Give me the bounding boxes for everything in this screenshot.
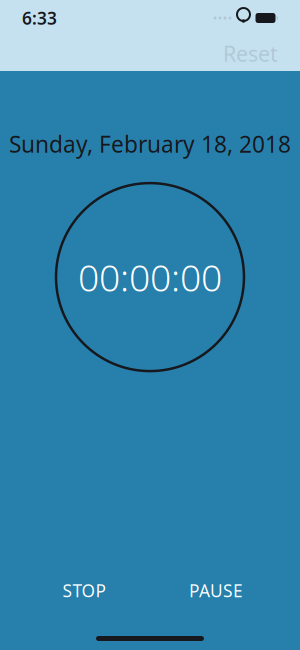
staticText: 6:33 xyxy=(22,6,57,29)
staticText: PAUSE xyxy=(189,579,243,602)
button[interactable]: PAUSE xyxy=(150,569,282,612)
staticText: Sunday, February 18, 2018 xyxy=(9,129,291,159)
staticText: STOP xyxy=(62,579,105,602)
button[interactable]: STOP xyxy=(18,569,150,612)
staticText: Reset xyxy=(223,39,278,68)
staticText: 00:00:00 xyxy=(78,252,222,302)
button[interactable]: Reset xyxy=(212,32,289,75)
